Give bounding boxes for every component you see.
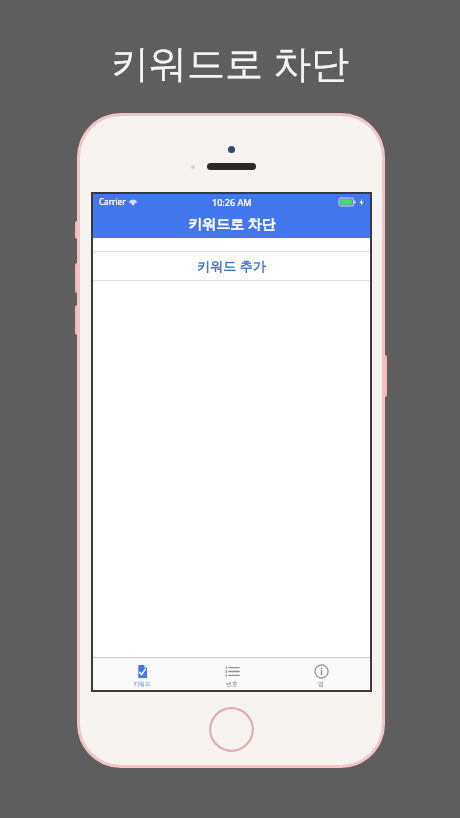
staticText: 키워드로 차단 <box>0 36 460 88</box>
staticText: 키워드 <box>133 680 151 688</box>
staticText: 번호 <box>226 680 238 688</box>
staticText: 키워드 추가 <box>197 257 266 275</box>
button[interactable]: 키워드 <box>101 658 183 690</box>
staticText: 10:26 AM <box>212 196 252 208</box>
staticText: 앱 <box>318 680 324 688</box>
button[interactable]: 키워드 추가 <box>93 252 370 280</box>
staticText: 키워드로 차단 <box>188 214 276 233</box>
staticText: Carrier <box>99 196 126 207</box>
button[interactable]: 번호 <box>191 658 273 690</box>
button[interactable]: Home <box>209 707 254 752</box>
button[interactable]: 앱 <box>280 658 362 690</box>
